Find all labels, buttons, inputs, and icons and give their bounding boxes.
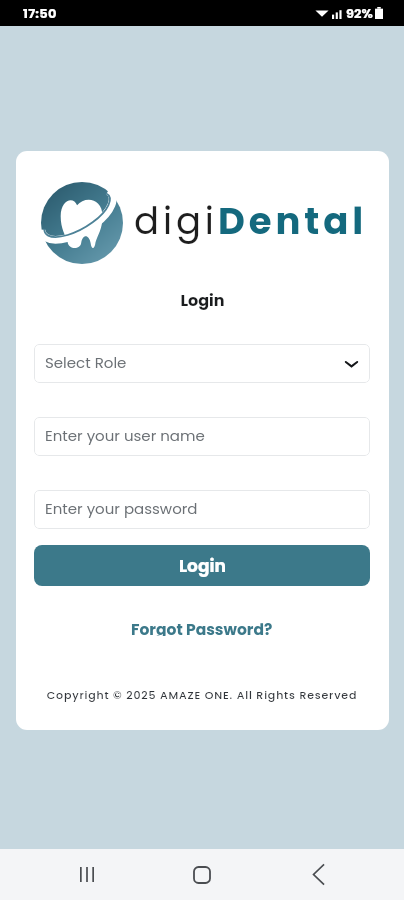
staticText: Enter your user name [45, 425, 205, 446]
staticText: Login [179, 554, 226, 578]
button[interactable]: Home [173, 849, 231, 900]
button[interactable]: Enter your password [34, 490, 370, 529]
button[interactable]: Select Role [34, 344, 370, 383]
button[interactable]: Back [289, 849, 347, 900]
staticText: Dental [218, 195, 367, 247]
button[interactable]: Recent apps [58, 849, 116, 900]
staticText: Enter your password [45, 498, 198, 519]
button[interactable]: Login [34, 545, 370, 586]
staticText: Login [16, 289, 389, 311]
button[interactable]: Forgot Password? [125, 608, 279, 636]
button[interactable]: Enter your user name [34, 417, 370, 456]
staticText: Select Role [45, 352, 127, 373]
staticText: Copyright © 2025 AMAZE ONE. All Rights R… [34, 687, 370, 702]
staticText: Forgot Password? [131, 619, 273, 636]
staticText: digi [134, 195, 218, 247]
staticText: 92% [346, 4, 373, 22]
staticText: 17:50 [23, 4, 57, 22]
